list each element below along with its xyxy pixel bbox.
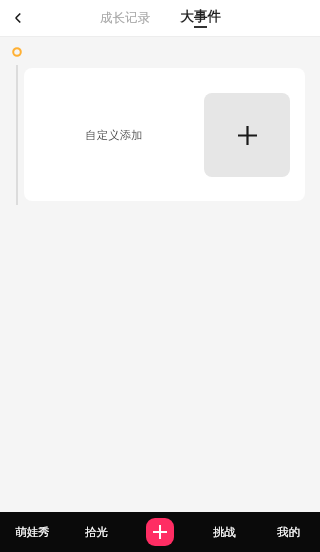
staticText: 挑战 [213,525,236,539]
button[interactable]: 成长记录 [92,6,158,30]
button[interactable]: 挑战 [192,512,256,552]
staticText: 大事件 [180,8,221,25]
button[interactable]: Add custom event [204,93,290,177]
staticText: 拾光 [85,525,108,539]
button[interactable]: 我的 [256,512,320,552]
button[interactable]: 大事件 [172,4,229,32]
staticText: 我的 [277,525,300,539]
button[interactable]: Back [0,0,36,36]
button[interactable]: 萌娃秀 [0,512,64,552]
button[interactable]: Create [146,518,174,546]
staticText: 萌娃秀 [15,525,50,539]
staticText: 自定义添加 [85,128,143,142]
button[interactable]: 自定义添加 [24,68,305,201]
button[interactable]: 拾光 [64,512,128,552]
staticText: 成长记录 [100,10,150,26]
